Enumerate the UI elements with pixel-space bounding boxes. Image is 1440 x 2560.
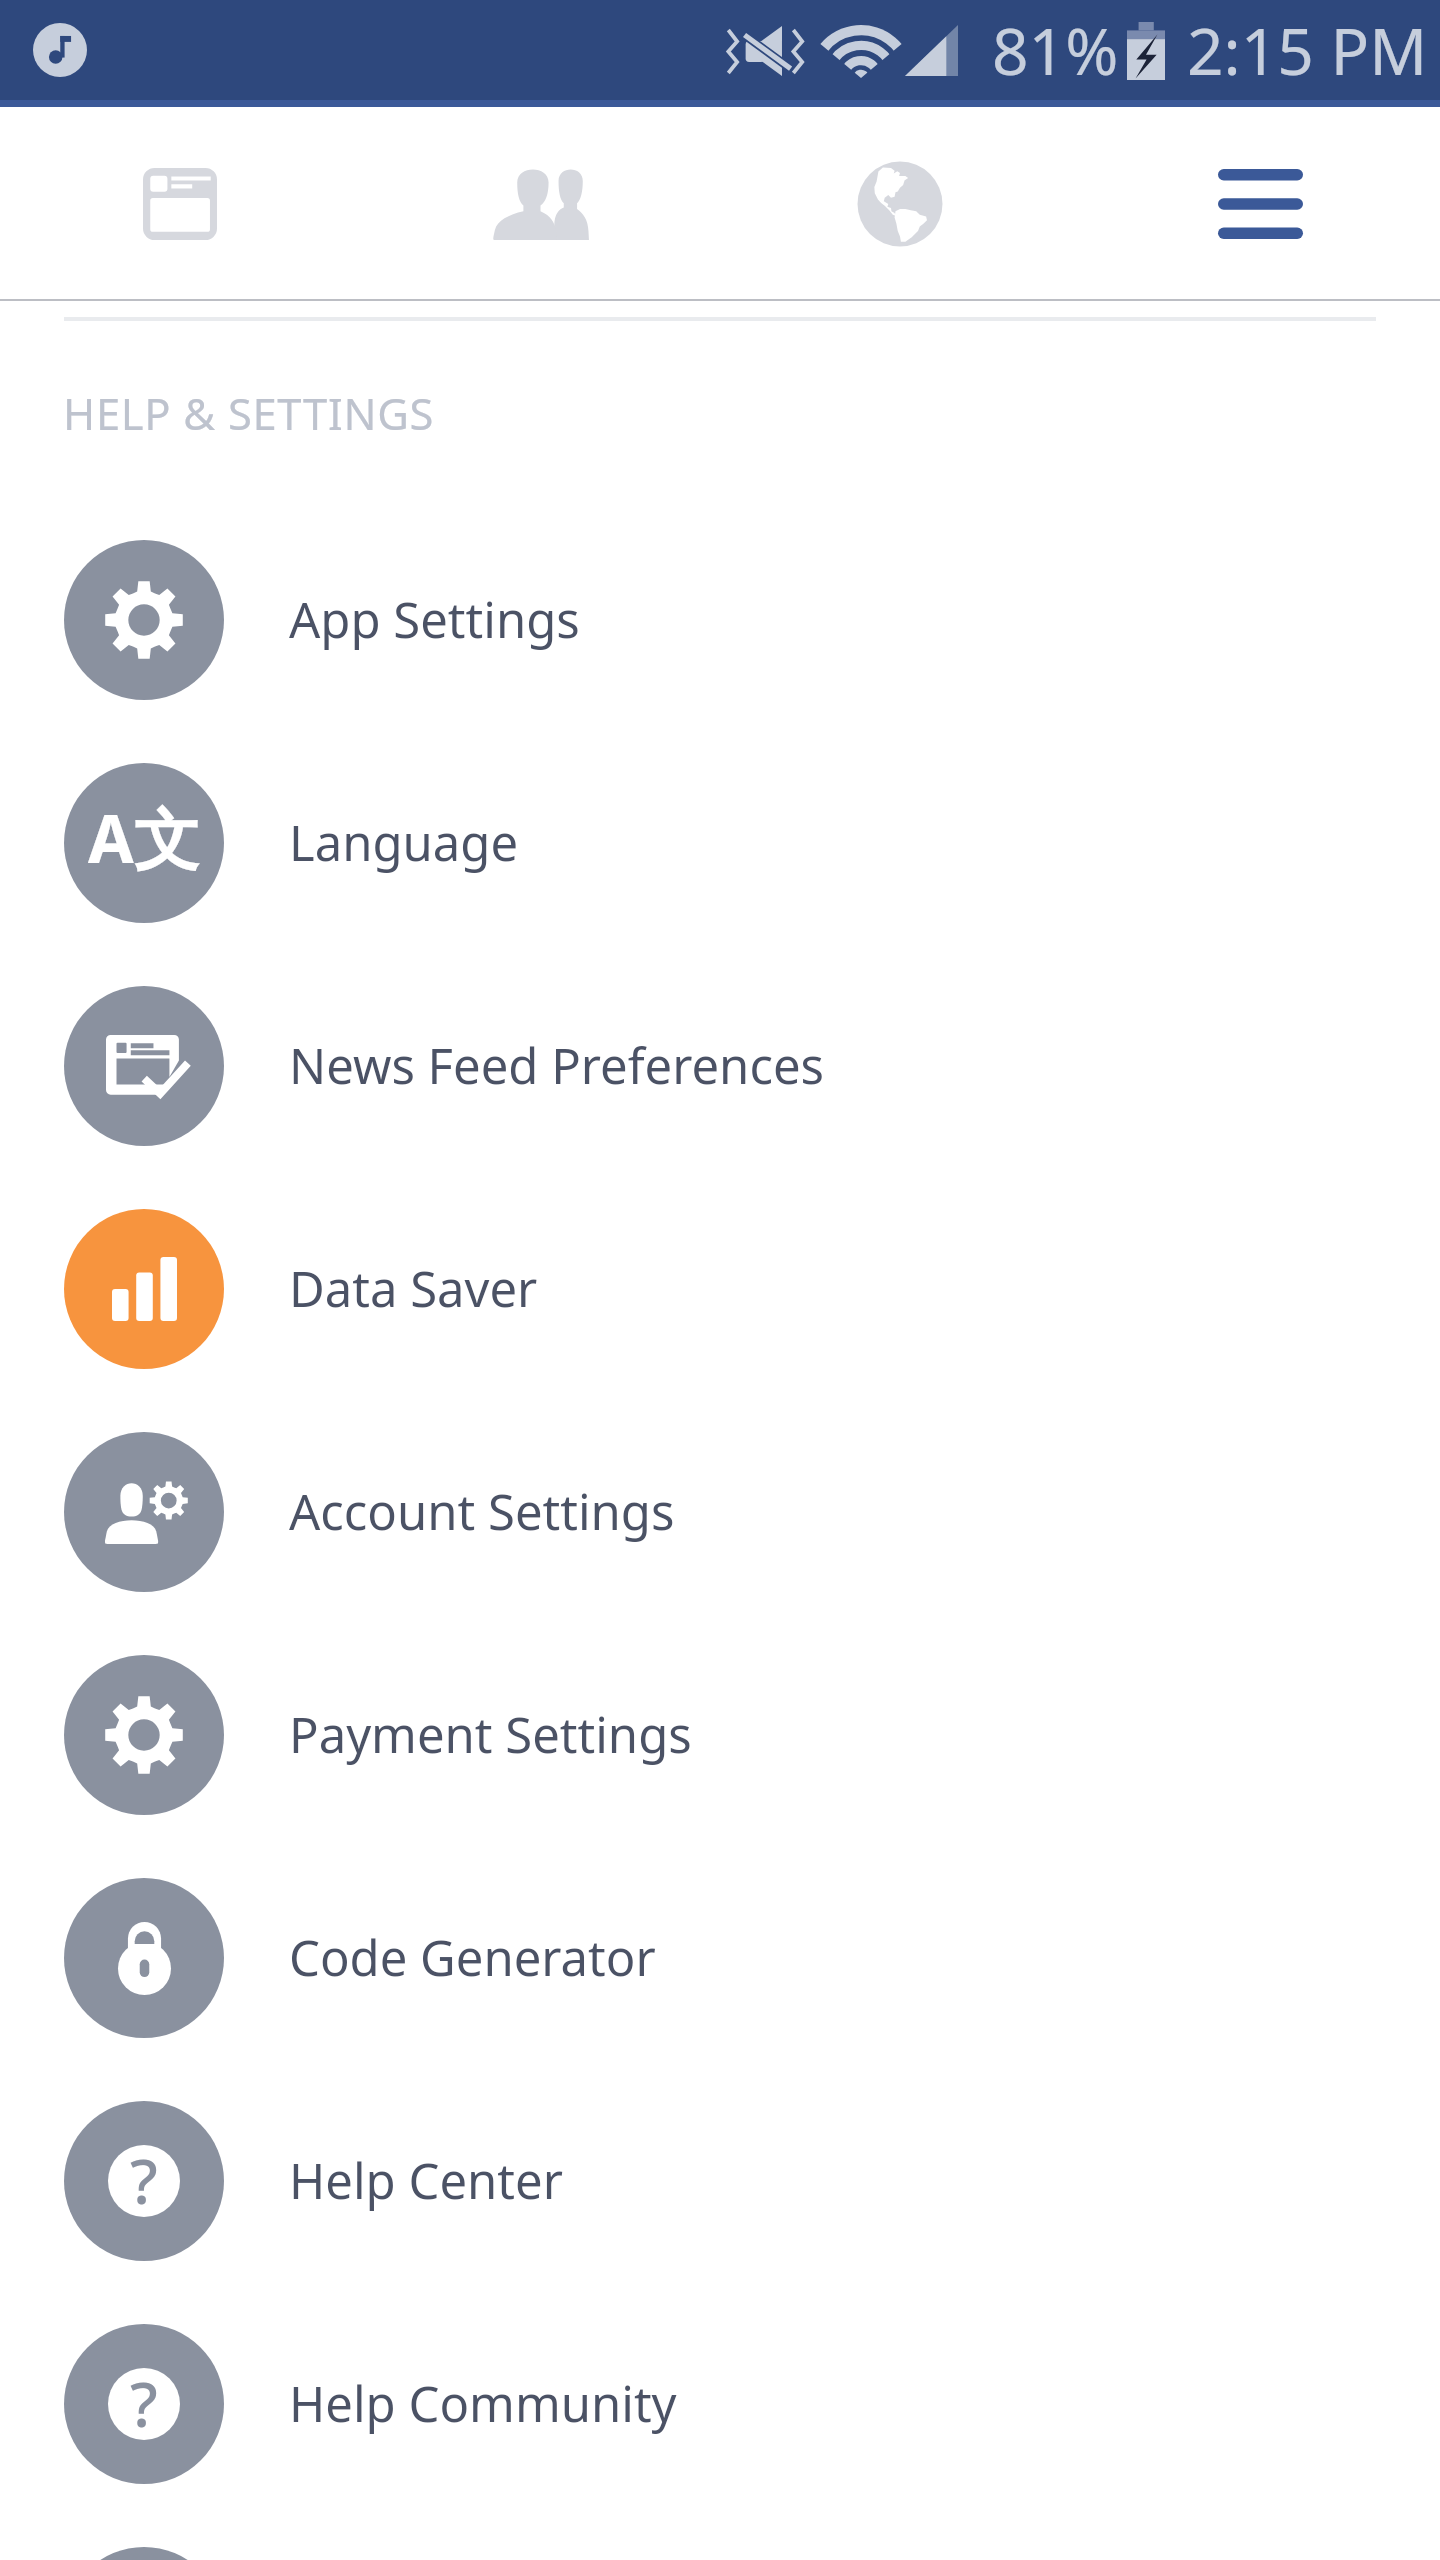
- button[interactable]: Account Settings: [0, 1400, 1440, 1623]
- button[interactable]: ?: [0, 2515, 1440, 2560]
- staticText: 81%: [992, 7, 1119, 94]
- staticText: ?: [130, 2145, 158, 2210]
- staticText: News Feed Preferences: [289, 1032, 825, 1099]
- staticText: HELP & SETTINGS: [63, 383, 435, 442]
- staticText: Code Generator: [289, 1924, 656, 1991]
- staticText: 2:15 PM: [1187, 7, 1428, 94]
- button[interactable]: App Settings: [0, 508, 1440, 731]
- button[interactable]: Menu: [1080, 107, 1440, 301]
- staticText: Help Community: [289, 2370, 677, 2437]
- button[interactable]: Globe: [720, 107, 1080, 301]
- staticText: Account Settings: [289, 1478, 675, 1545]
- button[interactable]: News Feed: [0, 107, 360, 301]
- staticText: A文: [88, 792, 200, 882]
- staticText: Language: [289, 809, 519, 876]
- button[interactable]: News Feed Preferences: [0, 954, 1440, 1177]
- staticText: Data Saver: [289, 1255, 538, 1322]
- staticText: ?: [130, 2368, 158, 2433]
- staticText: Help Center: [289, 2147, 563, 2214]
- button[interactable]: Payment Settings: [0, 1623, 1440, 1846]
- button[interactable]: ?: [0, 2069, 1440, 2292]
- button[interactable]: Friends: [360, 107, 720, 301]
- button[interactable]: ?: [0, 2292, 1440, 2515]
- button[interactable]: Code Generator: [0, 1846, 1440, 2069]
- staticText: Payment Settings: [289, 1701, 692, 1768]
- button[interactable]: Data Saver: [0, 1177, 1440, 1400]
- staticText: App Settings: [289, 586, 580, 653]
- button[interactable]: A文: [0, 731, 1440, 954]
